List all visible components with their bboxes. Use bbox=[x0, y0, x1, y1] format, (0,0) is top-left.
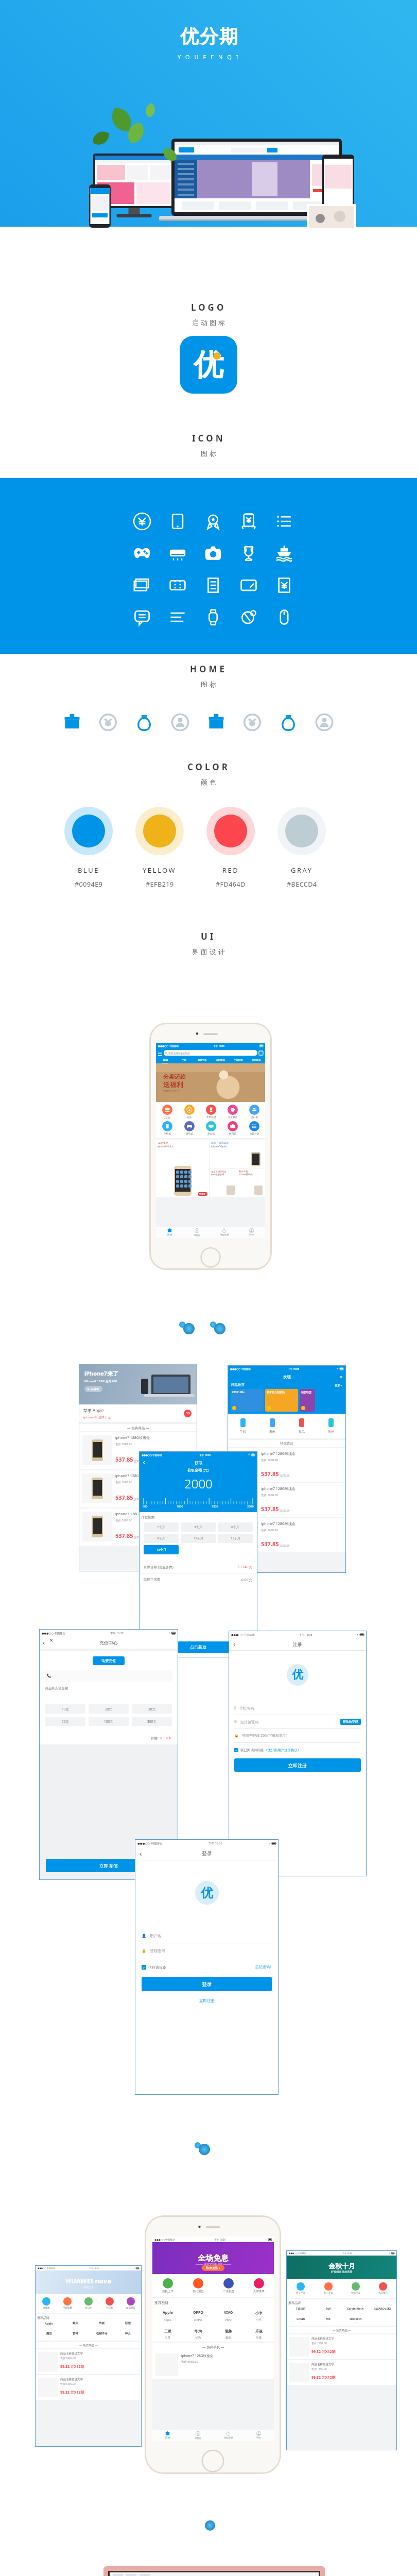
button[interactable]: 登录 bbox=[142, 1977, 272, 1991]
button[interactable]: 台式机 bbox=[99, 2297, 120, 2310]
button[interactable]: 15个月 bbox=[218, 1534, 253, 1543]
button[interactable]: 100元 bbox=[89, 1717, 129, 1726]
button[interactable]: 电脑平板 bbox=[193, 1057, 211, 1063]
button[interactable]: Menu bbox=[158, 1051, 162, 1055]
button[interactable]: 我的 bbox=[244, 2430, 274, 2441]
button[interactable]: ✓ bbox=[234, 1748, 238, 1752]
button[interactable]: 10元 bbox=[45, 1704, 85, 1714]
button[interactable]: U基金 bbox=[183, 2430, 213, 2441]
staticText: 500 bbox=[143, 1504, 148, 1508]
staticText: 推荐品牌 bbox=[152, 2300, 169, 2306]
button[interactable]: 借款分期 bbox=[213, 2430, 244, 2441]
staticText: 售价:5688.00 bbox=[261, 1528, 278, 1532]
button[interactable]: 立即注册 bbox=[199, 1998, 215, 2003]
staticText: 忘记密码? bbox=[255, 1964, 272, 1970]
button[interactable]: 轻奢助力迎新购 bbox=[265, 1389, 298, 1412]
button[interactable]: 新内存首降200 bbox=[211, 1141, 264, 1166]
button[interactable]: 洗护 bbox=[316, 1418, 345, 1434]
staticText: 537.85 bbox=[261, 1470, 279, 1478]
button[interactable]: Scan bbox=[259, 1051, 263, 1055]
button[interactable]: 手机 bbox=[175, 1057, 193, 1063]
button[interactable]: 进口馆 bbox=[244, 1105, 265, 1119]
staticText: 猜你喜欢 bbox=[280, 1442, 293, 1446]
button[interactable]: 立即注册 bbox=[234, 1758, 361, 1772]
button[interactable]: 数码馆 bbox=[222, 1121, 244, 1136]
button[interactable]: U基金 bbox=[156, 1105, 178, 1119]
button[interactable]: 摄影数码 bbox=[211, 1057, 229, 1063]
button[interactable]: 12期免息 bbox=[158, 1141, 207, 1196]
button[interactable]: 大牌直降 bbox=[244, 2278, 274, 2293]
button[interactable]: 家电馆 bbox=[200, 1121, 222, 1136]
button[interactable]: 我的 bbox=[238, 1227, 265, 1238]
button[interactable]: 笔记本 bbox=[78, 2297, 99, 2310]
staticText: TISSOT bbox=[296, 2307, 306, 2310]
staticText: HUAWEI nova bbox=[66, 2276, 111, 2285]
button[interactable]: 点击获取 bbox=[144, 1641, 253, 1653]
button[interactable]: ▶ 去看看 bbox=[88, 1387, 99, 1391]
button[interactable]: 立即充值 bbox=[46, 1859, 171, 1872]
button[interactable]: 18个月 bbox=[144, 1545, 179, 1554]
button[interactable]: 20元 bbox=[89, 1704, 129, 1714]
button[interactable]: 商城 bbox=[152, 2430, 183, 2441]
button[interactable]: 3个月 bbox=[181, 1522, 216, 1532]
button[interactable]: 家用电器 bbox=[247, 1057, 265, 1063]
staticText: iPhone7 128G 直降200 bbox=[84, 1379, 117, 1383]
button[interactable]: 新品免息 bbox=[239, 1170, 264, 1196]
staticText: 商城 bbox=[167, 1233, 172, 1236]
button[interactable]: 热门爆款 bbox=[183, 2278, 213, 2293]
staticText: 游戏馆 bbox=[186, 1132, 193, 1136]
button[interactable]: 充值 bbox=[178, 1105, 200, 1119]
staticText: 99.32 元X12期 bbox=[60, 2364, 84, 2369]
button[interactable]: 游戏馆 bbox=[178, 1121, 200, 1136]
button[interactable]: 新机上市 bbox=[152, 2278, 183, 2293]
staticText: 女士手表 bbox=[324, 2292, 333, 2295]
button[interactable]: ✓ bbox=[142, 1965, 146, 1970]
button[interactable]: OPPO R9s bbox=[231, 1389, 264, 1412]
staticText: ⚡ bbox=[337, 1367, 339, 1370]
button[interactable]: 礼品饰品 bbox=[369, 2282, 396, 2295]
button[interactable]: 30元 bbox=[132, 1704, 172, 1714]
staticText: 手表配饰 bbox=[234, 1059, 243, 1062]
button[interactable]: 搜索您感兴趣的商品 bbox=[164, 1050, 257, 1056]
button[interactable]: 全部分类 bbox=[244, 1121, 265, 1136]
button[interactable]: 精选 bbox=[156, 1057, 175, 1063]
button[interactable]: 家电 bbox=[257, 1418, 287, 1434]
button[interactable]: 商城 bbox=[156, 1227, 183, 1238]
button[interactable]: 免息直降100元 bbox=[211, 1170, 236, 1196]
button[interactable]: 话费充值 bbox=[93, 1656, 125, 1665]
button[interactable]: 手机 bbox=[228, 1418, 257, 1434]
button[interactable]: 获取验证码 bbox=[343, 1720, 358, 1724]
staticText: 充值中心 bbox=[99, 1640, 118, 1646]
button[interactable]: 12个月 bbox=[181, 1534, 216, 1543]
button[interactable]: U基金 bbox=[183, 1227, 211, 1238]
staticText: YELLOW bbox=[143, 866, 177, 875]
button[interactable]: 电脑外设 bbox=[120, 2297, 141, 2310]
button[interactable]: 手表配饰 bbox=[229, 1057, 247, 1063]
button[interactable]: 1个月 bbox=[144, 1522, 179, 1532]
button[interactable]: 50元 bbox=[45, 1717, 85, 1726]
button[interactable]: 本周热销 bbox=[200, 1105, 222, 1119]
staticText: Y O U F E N Q I bbox=[178, 53, 240, 61]
button[interactable]: 300元 bbox=[132, 1717, 172, 1726]
staticText: ●●●○○ 中国移动 bbox=[158, 1044, 179, 1047]
button[interactable]: 男士手表 bbox=[287, 2282, 315, 2295]
button[interactable]: 智能手表 bbox=[342, 2282, 369, 2295]
button[interactable]: 游戏本 bbox=[36, 2297, 57, 2310]
staticText: 金秋十月 bbox=[328, 2262, 355, 2270]
staticText: ▼ 首发 bbox=[199, 1193, 206, 1195]
button[interactable]: 二手机器 bbox=[213, 2278, 244, 2293]
button[interactable]: 平板电脑 bbox=[57, 2297, 78, 2310]
button[interactable]: 手机馆 bbox=[156, 1121, 178, 1136]
staticText: 537.85 bbox=[261, 1540, 279, 1548]
button[interactable]: 礼品 bbox=[287, 1418, 316, 1434]
button[interactable]: 借款分期 bbox=[211, 1227, 238, 1238]
button[interactable]: 精品联盟 bbox=[300, 1389, 315, 1412]
button[interactable]: 女生频道 bbox=[222, 1105, 244, 1119]
button[interactable]: 快来抢购 › bbox=[206, 2266, 220, 2270]
button[interactable]: 女士手表 bbox=[315, 2282, 342, 2295]
button[interactable]: 9个月 bbox=[144, 1534, 179, 1543]
button[interactable]: 6个月 bbox=[218, 1522, 253, 1532]
staticText: 精品联盟 bbox=[301, 1391, 311, 1394]
button[interactable]: 优 bbox=[180, 336, 237, 394]
staticText: 轻奢助力迎新购 bbox=[267, 1391, 285, 1394]
